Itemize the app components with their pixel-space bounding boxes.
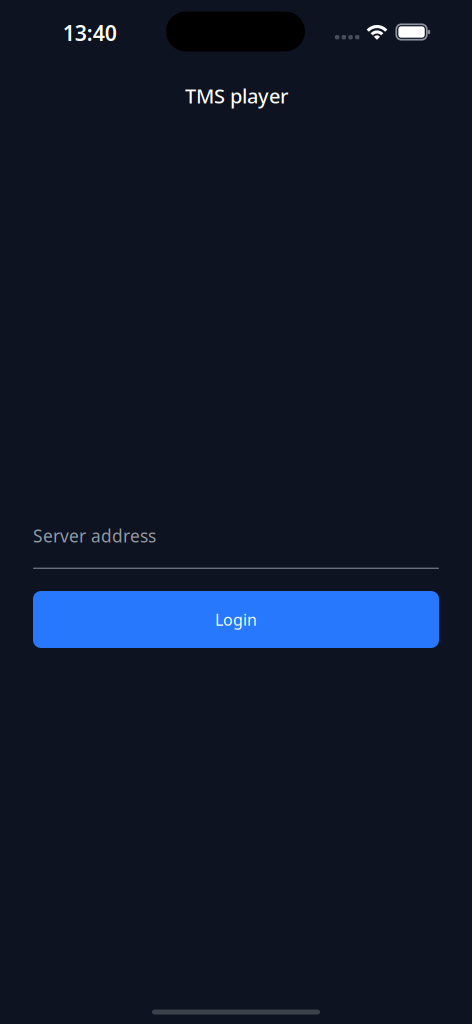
button[interactable]: Login: [33, 591, 439, 648]
staticText: 13:40: [63, 18, 117, 47]
button[interactable]: Server address: [33, 517, 439, 569]
staticText: Login: [215, 609, 257, 630]
staticText: TMS player: [185, 82, 288, 109]
staticText: Server address: [33, 524, 156, 547]
